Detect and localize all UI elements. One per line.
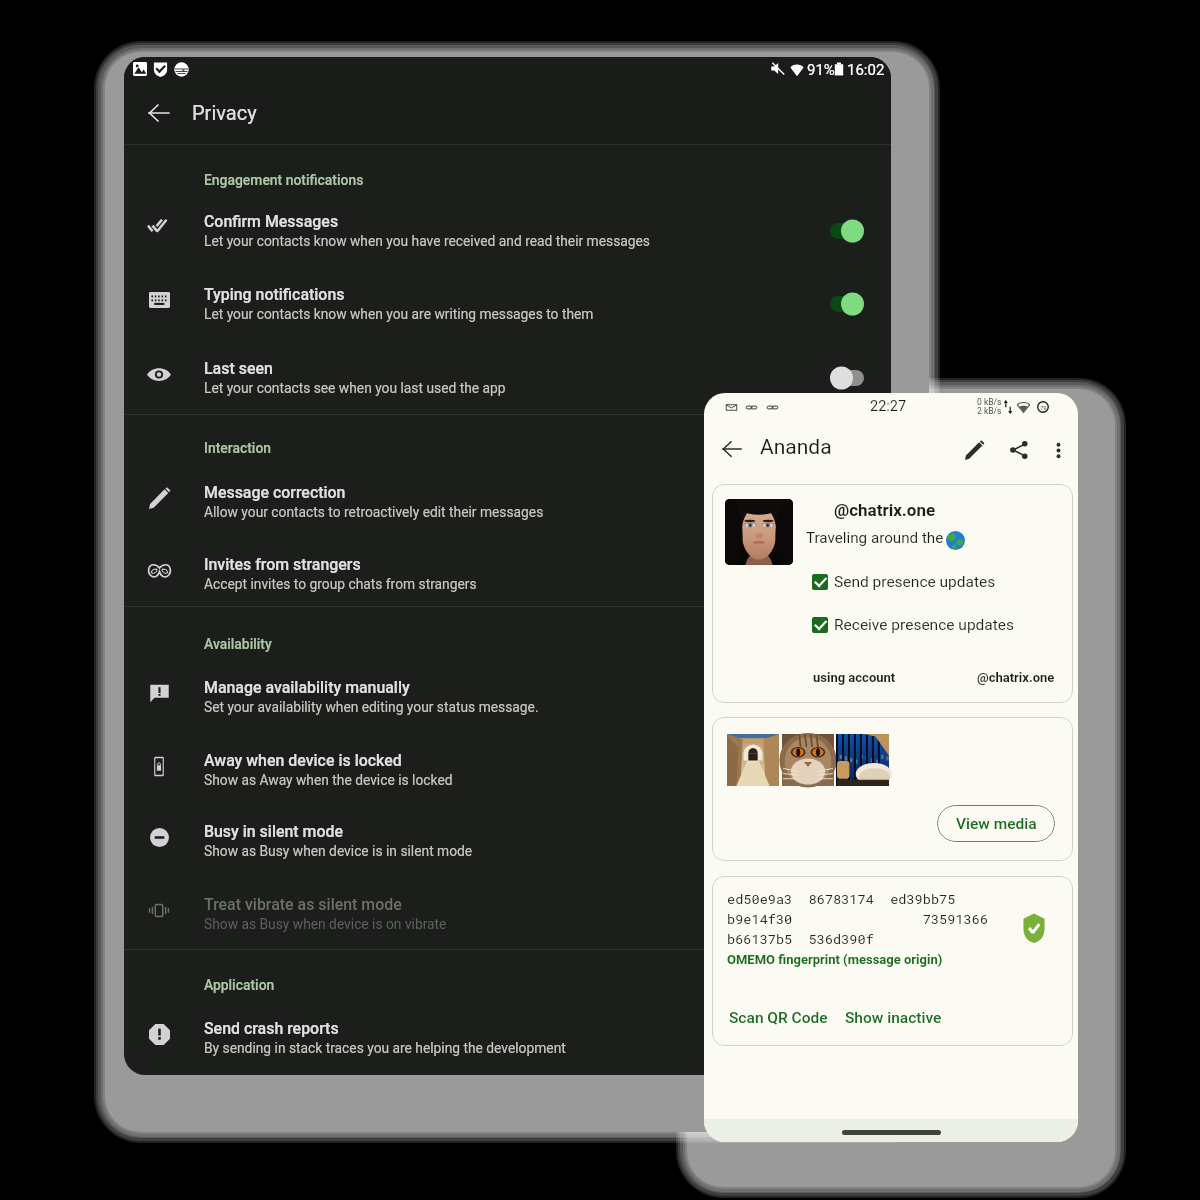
staticText: Show inactive xyxy=(845,1009,942,1027)
staticText: Traveling around the xyxy=(806,529,944,547)
staticText: Ananda xyxy=(760,435,832,460)
button[interactable]: Scan QR Code xyxy=(725,1005,832,1031)
staticText: @chatrix.one xyxy=(977,670,1055,685)
button[interactable]: Share xyxy=(1002,433,1036,467)
staticText: Let your contacts see when you last used… xyxy=(204,380,506,396)
staticText: Treat vibrate as silent mode xyxy=(204,895,402,914)
button[interactable]: Busy in silent mode xyxy=(124,811,891,879)
staticText: 79 xyxy=(1040,404,1047,411)
staticText: Show as Busy when device is on vibrate xyxy=(204,916,447,932)
staticText: b9e14f30 73591366 xyxy=(727,910,989,928)
button[interactable]: Show inactive xyxy=(841,1005,946,1031)
button[interactable]: Toggle Last seen xyxy=(819,359,875,397)
button[interactable]: Treat vibrate as silent mode xyxy=(124,884,891,952)
staticText: 0 kB/s xyxy=(977,397,1002,407)
staticText: Let your contacts know when you have rec… xyxy=(204,233,650,249)
staticText: Show as Busy when device is in silent mo… xyxy=(204,843,473,859)
staticText: Let your contacts know when you are writ… xyxy=(204,306,594,322)
button[interactable]: Confirm Messages xyxy=(124,201,891,269)
button[interactable]: Edit xyxy=(957,433,991,467)
staticText: Scan QR Code xyxy=(729,1009,828,1027)
staticText: View media xyxy=(956,815,1037,833)
staticText: Allow your contacts to retroactively edi… xyxy=(204,504,544,520)
staticText: Away when device is locked xyxy=(204,751,402,770)
button[interactable]: Message correction xyxy=(124,472,891,540)
staticText: Accept invites to group chats from stran… xyxy=(204,576,477,592)
staticText: @chatrix.one xyxy=(834,500,936,520)
staticText: By sending in stack traces you are helpi… xyxy=(204,1040,566,1056)
staticText: Show as Away when the device is locked xyxy=(204,772,453,788)
staticText: Confirm Messages xyxy=(204,212,339,231)
button[interactable]: Back xyxy=(141,95,177,131)
staticText: 22:27 xyxy=(870,398,907,415)
staticText: Invites from strangers xyxy=(204,555,361,574)
button[interactable]: Back xyxy=(714,431,750,467)
button[interactable]: More options xyxy=(1041,433,1075,467)
button[interactable]: Manage availability manually xyxy=(124,667,891,735)
staticText: Set your availability when editing your … xyxy=(204,699,539,715)
button[interactable]: Send presence updates xyxy=(812,571,996,592)
staticText: Last seen xyxy=(204,359,273,378)
staticText: Privacy xyxy=(192,101,257,124)
staticText: Receive presence updates xyxy=(834,616,1015,634)
staticText: Send presence updates xyxy=(834,573,996,591)
button[interactable]: Typing notifications xyxy=(124,274,891,342)
staticText: OMEMO fingerprint (message origin) xyxy=(727,952,943,967)
button[interactable]: Receive presence updates xyxy=(812,614,1015,635)
staticText: Availability xyxy=(204,636,272,652)
staticText: 2 kB/s xyxy=(977,406,1002,416)
staticText: Manage availability manually xyxy=(204,678,410,697)
staticText: Interaction xyxy=(204,440,272,456)
staticText: Message correction xyxy=(204,483,346,502)
button[interactable]: View media xyxy=(937,805,1055,842)
staticText: ed50e9a3 86783174 ed39bb75 xyxy=(727,890,956,908)
button[interactable]: Toggle Typing notifications xyxy=(819,285,875,323)
button[interactable]: Last seen xyxy=(124,348,891,416)
staticText: Send crash reports xyxy=(204,1019,339,1038)
button[interactable]: Toggle Confirm Messages xyxy=(819,212,875,250)
button[interactable]: Away when device is locked xyxy=(124,740,891,808)
button[interactable]: Send crash reports xyxy=(124,1008,891,1075)
staticText: 16:02 xyxy=(847,61,885,79)
staticText: Engagement notifications xyxy=(204,172,364,188)
staticText: Typing notifications xyxy=(204,285,345,304)
staticText: Application xyxy=(204,977,275,993)
staticText: 91% xyxy=(807,61,835,79)
staticText: b66137b5 536d390f xyxy=(727,930,874,948)
button[interactable]: Invites from strangers xyxy=(124,544,891,612)
staticText: using account xyxy=(813,670,896,685)
staticText: Busy in silent mode xyxy=(204,822,343,841)
